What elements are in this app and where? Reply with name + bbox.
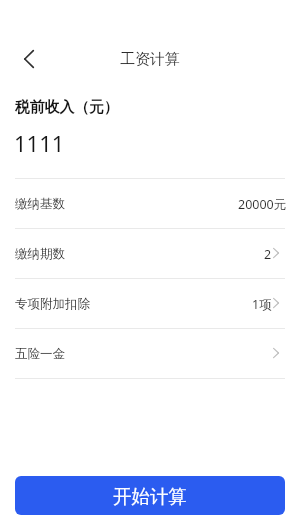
- staticText: 20000元: [238, 196, 287, 213]
- staticText: 1111: [14, 128, 65, 158]
- button[interactable]: 缴纳期数: [0, 229, 300, 278]
- button[interactable]: 缴纳基数: [0, 179, 300, 228]
- staticText: 工资计算: [120, 50, 180, 69]
- staticText: 开始计算: [113, 485, 187, 508]
- staticText: 2: [264, 246, 272, 263]
- staticText: 五险一金: [15, 346, 65, 362]
- staticText: 专项附加扣除: [15, 296, 90, 312]
- staticText: 税前收入（元）: [15, 98, 119, 117]
- staticText: 缴纳期数: [15, 246, 65, 262]
- button[interactable]: 五险一金: [0, 329, 300, 378]
- button[interactable]: 专项附加扣除: [0, 279, 300, 328]
- staticText: 1项: [252, 296, 272, 313]
- button[interactable]: 开始计算: [15, 476, 285, 515]
- staticText: 缴纳基数: [15, 196, 65, 212]
- button[interactable]: Back: [18, 45, 40, 73]
